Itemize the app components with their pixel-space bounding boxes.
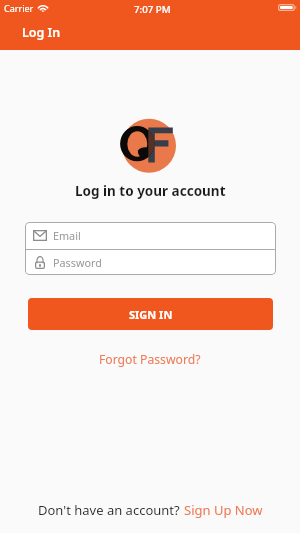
- staticText: Carrier: [4, 2, 34, 14]
- button[interactable]: Password: [25, 250, 276, 275]
- staticText: Email: [53, 228, 81, 243]
- button[interactable]: Email: [25, 222, 276, 249]
- staticText: Log in to your account: [75, 182, 226, 200]
- staticText: SIGN IN: [129, 307, 173, 322]
- button[interactable]: SIGN IN: [28, 298, 273, 330]
- staticText: Password: [53, 255, 102, 270]
- staticText: Don't have an account?: [38, 501, 180, 519]
- button[interactable]: Sign Up Now: [184, 501, 263, 519]
- staticText: Log In: [22, 24, 61, 41]
- button[interactable]: Forgot Password?: [93, 347, 207, 372]
- staticText: 7:07 PM: [134, 3, 171, 16]
- staticText: Sign Up Now: [184, 501, 263, 519]
- staticText: Forgot Password?: [99, 351, 201, 368]
